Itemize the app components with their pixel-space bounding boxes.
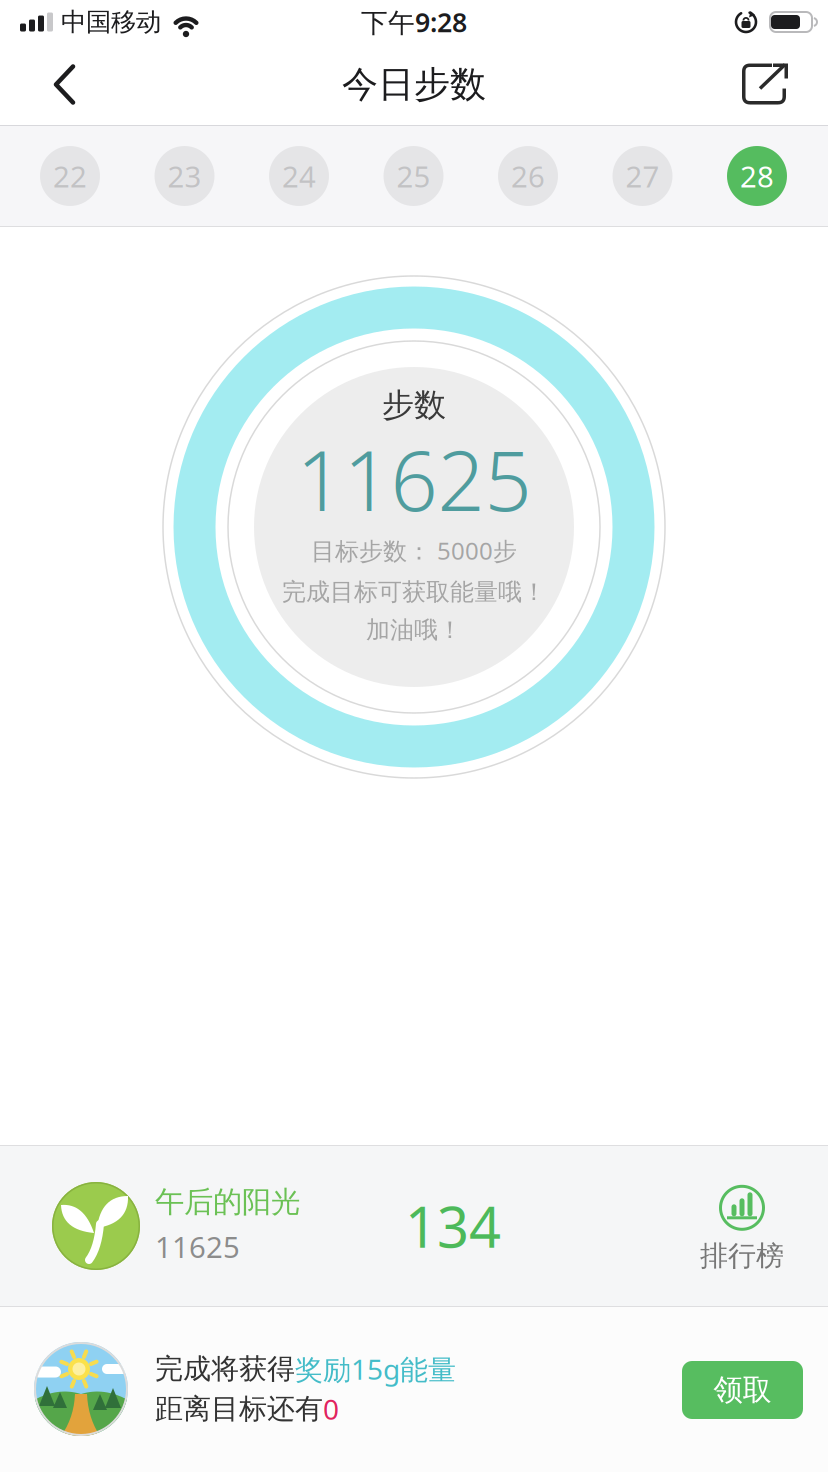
staticText: 22 <box>53 156 87 195</box>
staticText: 中国移动 <box>61 6 161 37</box>
staticText: 26 <box>511 156 545 195</box>
button[interactable]: 25 <box>383 146 443 206</box>
staticText: 11625 <box>296 424 531 534</box>
staticText: 步数 <box>382 385 446 425</box>
button[interactable]: 23 <box>154 146 214 206</box>
staticText: 领取 <box>713 1372 771 1408</box>
staticText: 24 <box>282 156 316 195</box>
staticText: 11625 <box>155 1227 240 1266</box>
button[interactable]: 排行榜 <box>700 1183 784 1273</box>
staticText: 完成目标可获取能量哦！ <box>282 577 546 607</box>
button[interactable]: 领取 <box>682 1361 803 1419</box>
staticText: 25 <box>396 156 430 195</box>
staticText: 排行榜 <box>700 1239 784 1273</box>
button[interactable]: 22 <box>40 146 100 206</box>
button[interactable]: 27 <box>612 146 672 206</box>
staticText: 目标步数： 5000步 <box>311 535 517 566</box>
button[interactable]: 28 <box>727 146 787 206</box>
staticText: 午后的阳光 <box>155 1184 300 1220</box>
staticText: 下午9:28 <box>361 4 467 40</box>
staticText: 23 <box>167 156 201 195</box>
staticText: 134 <box>405 1189 501 1263</box>
staticText: 距离目标还有 <box>155 1392 323 1426</box>
staticText: 加油哦！ <box>366 615 462 645</box>
staticText: 完成将获得 <box>155 1352 295 1386</box>
button[interactable]: 26 <box>498 146 558 206</box>
staticText: 27 <box>625 156 659 195</box>
button[interactable]: Share <box>742 45 828 123</box>
button[interactable]: 24 <box>269 146 329 206</box>
staticText: 奖励15g能量 <box>295 1350 456 1388</box>
staticText: 0 <box>323 1390 339 1428</box>
button[interactable]: Back <box>0 43 77 125</box>
staticText: 28 <box>740 156 774 195</box>
staticText: 今日步数 <box>342 62 486 107</box>
